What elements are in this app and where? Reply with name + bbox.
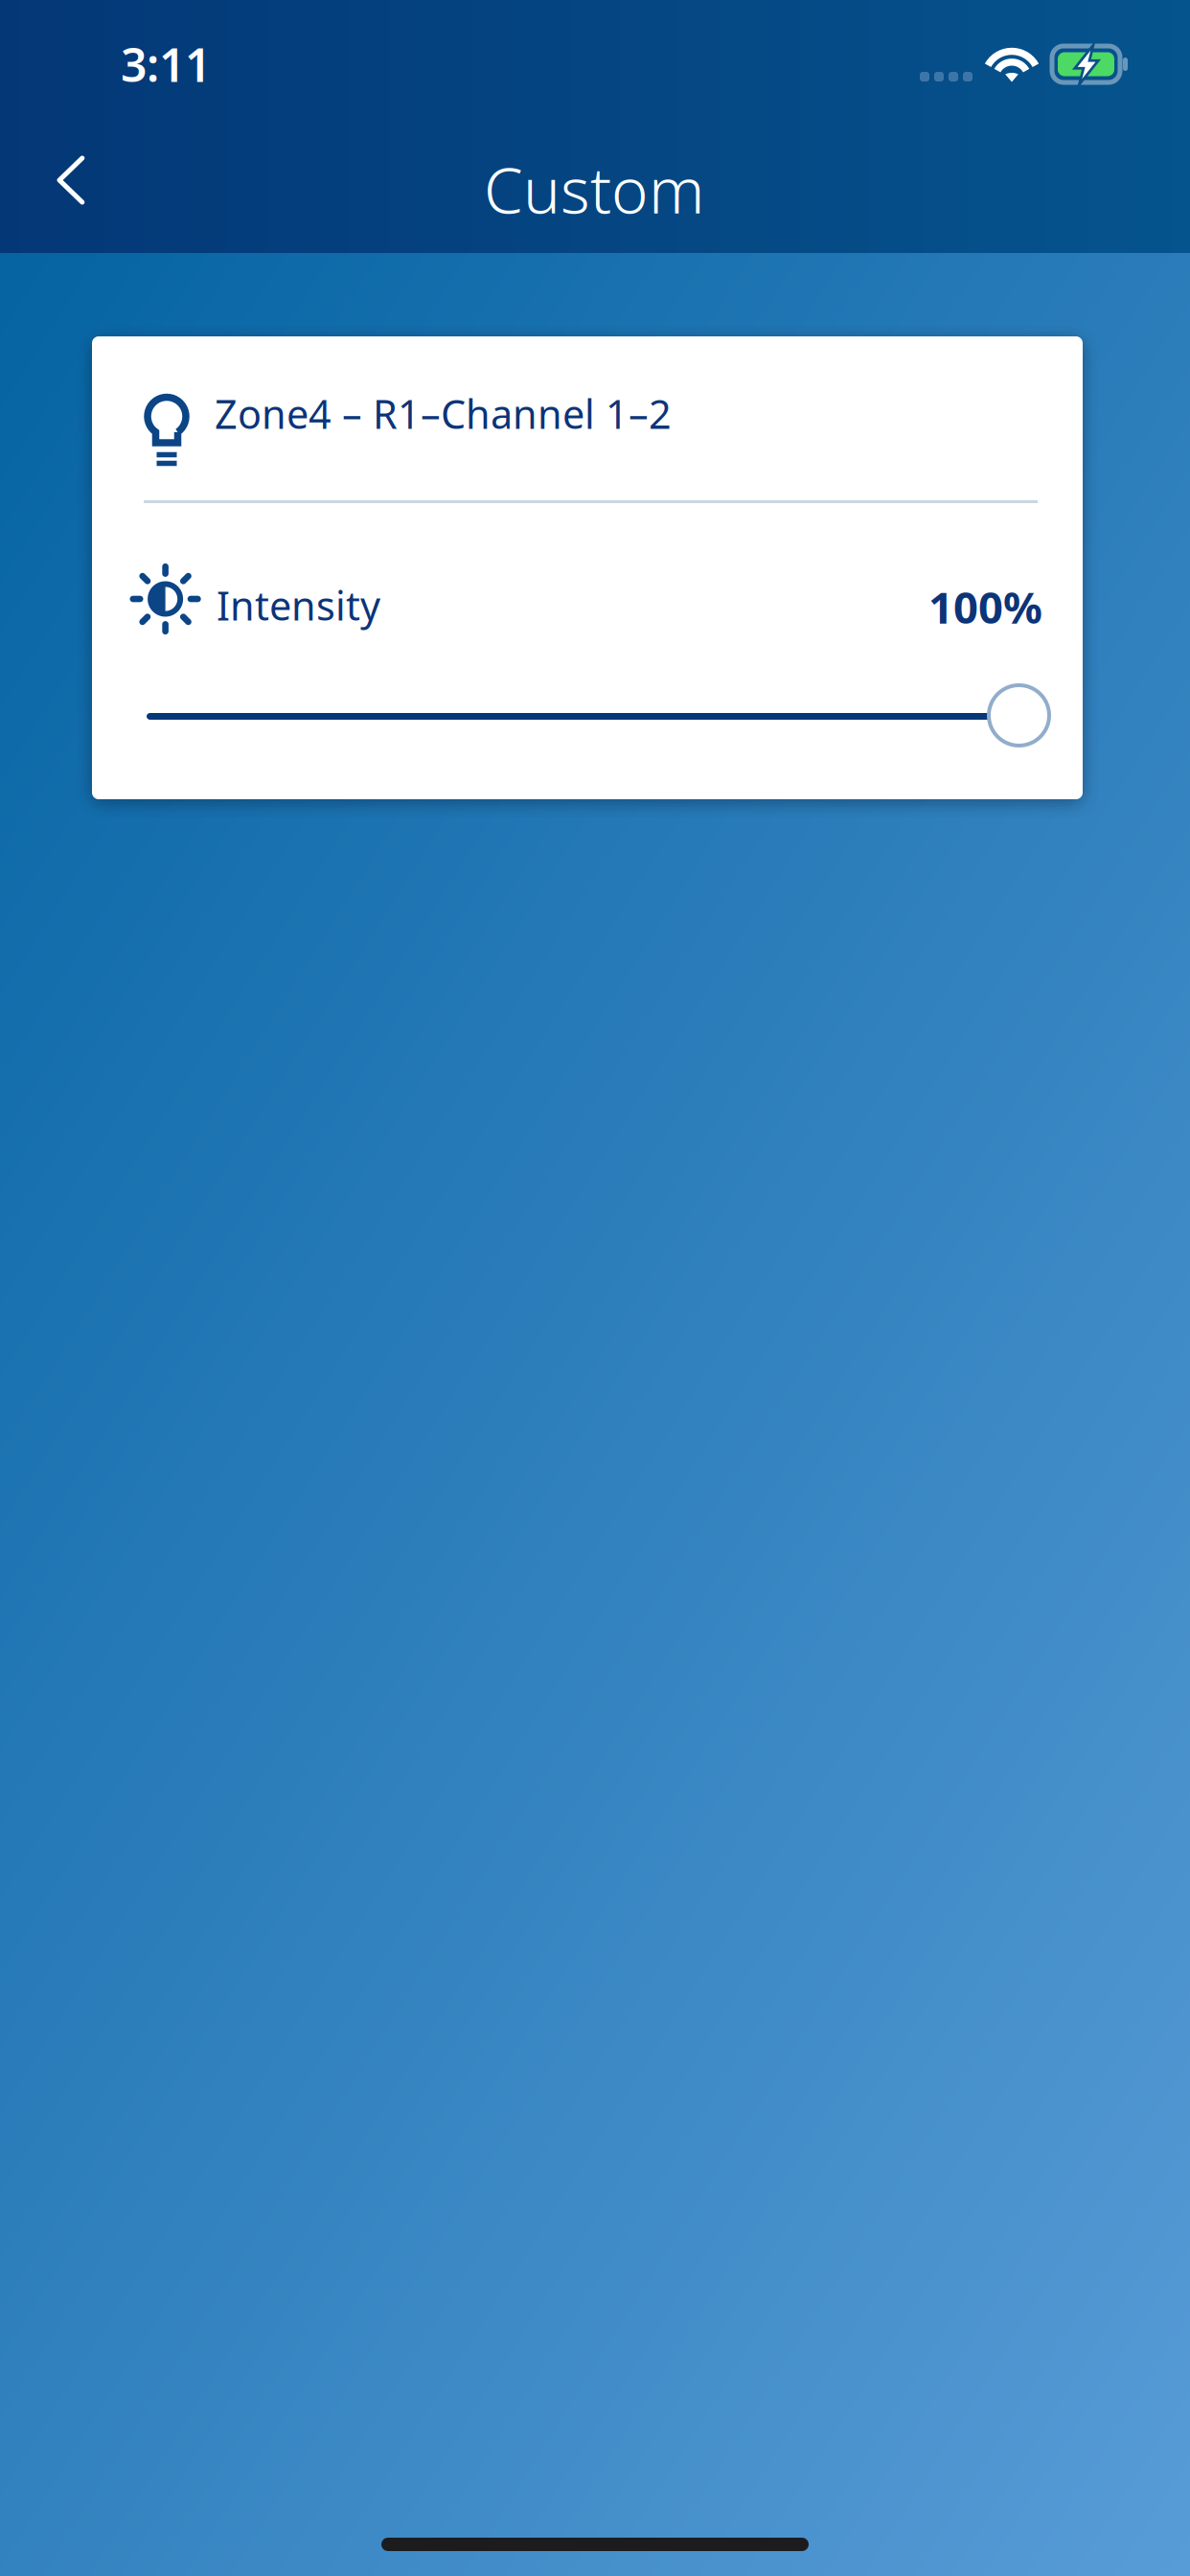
staticText: Zone4 – R1–Channel 1–2: [215, 387, 672, 440]
staticText: 3:11: [121, 34, 211, 95]
button[interactable]: Back: [13, 123, 128, 238]
staticText: 100%: [928, 578, 1042, 636]
staticText: Custom: [484, 148, 704, 231]
staticText: Intensity: [217, 579, 380, 631]
button[interactable]: Intensity 100 percent: [147, 678, 1047, 755]
